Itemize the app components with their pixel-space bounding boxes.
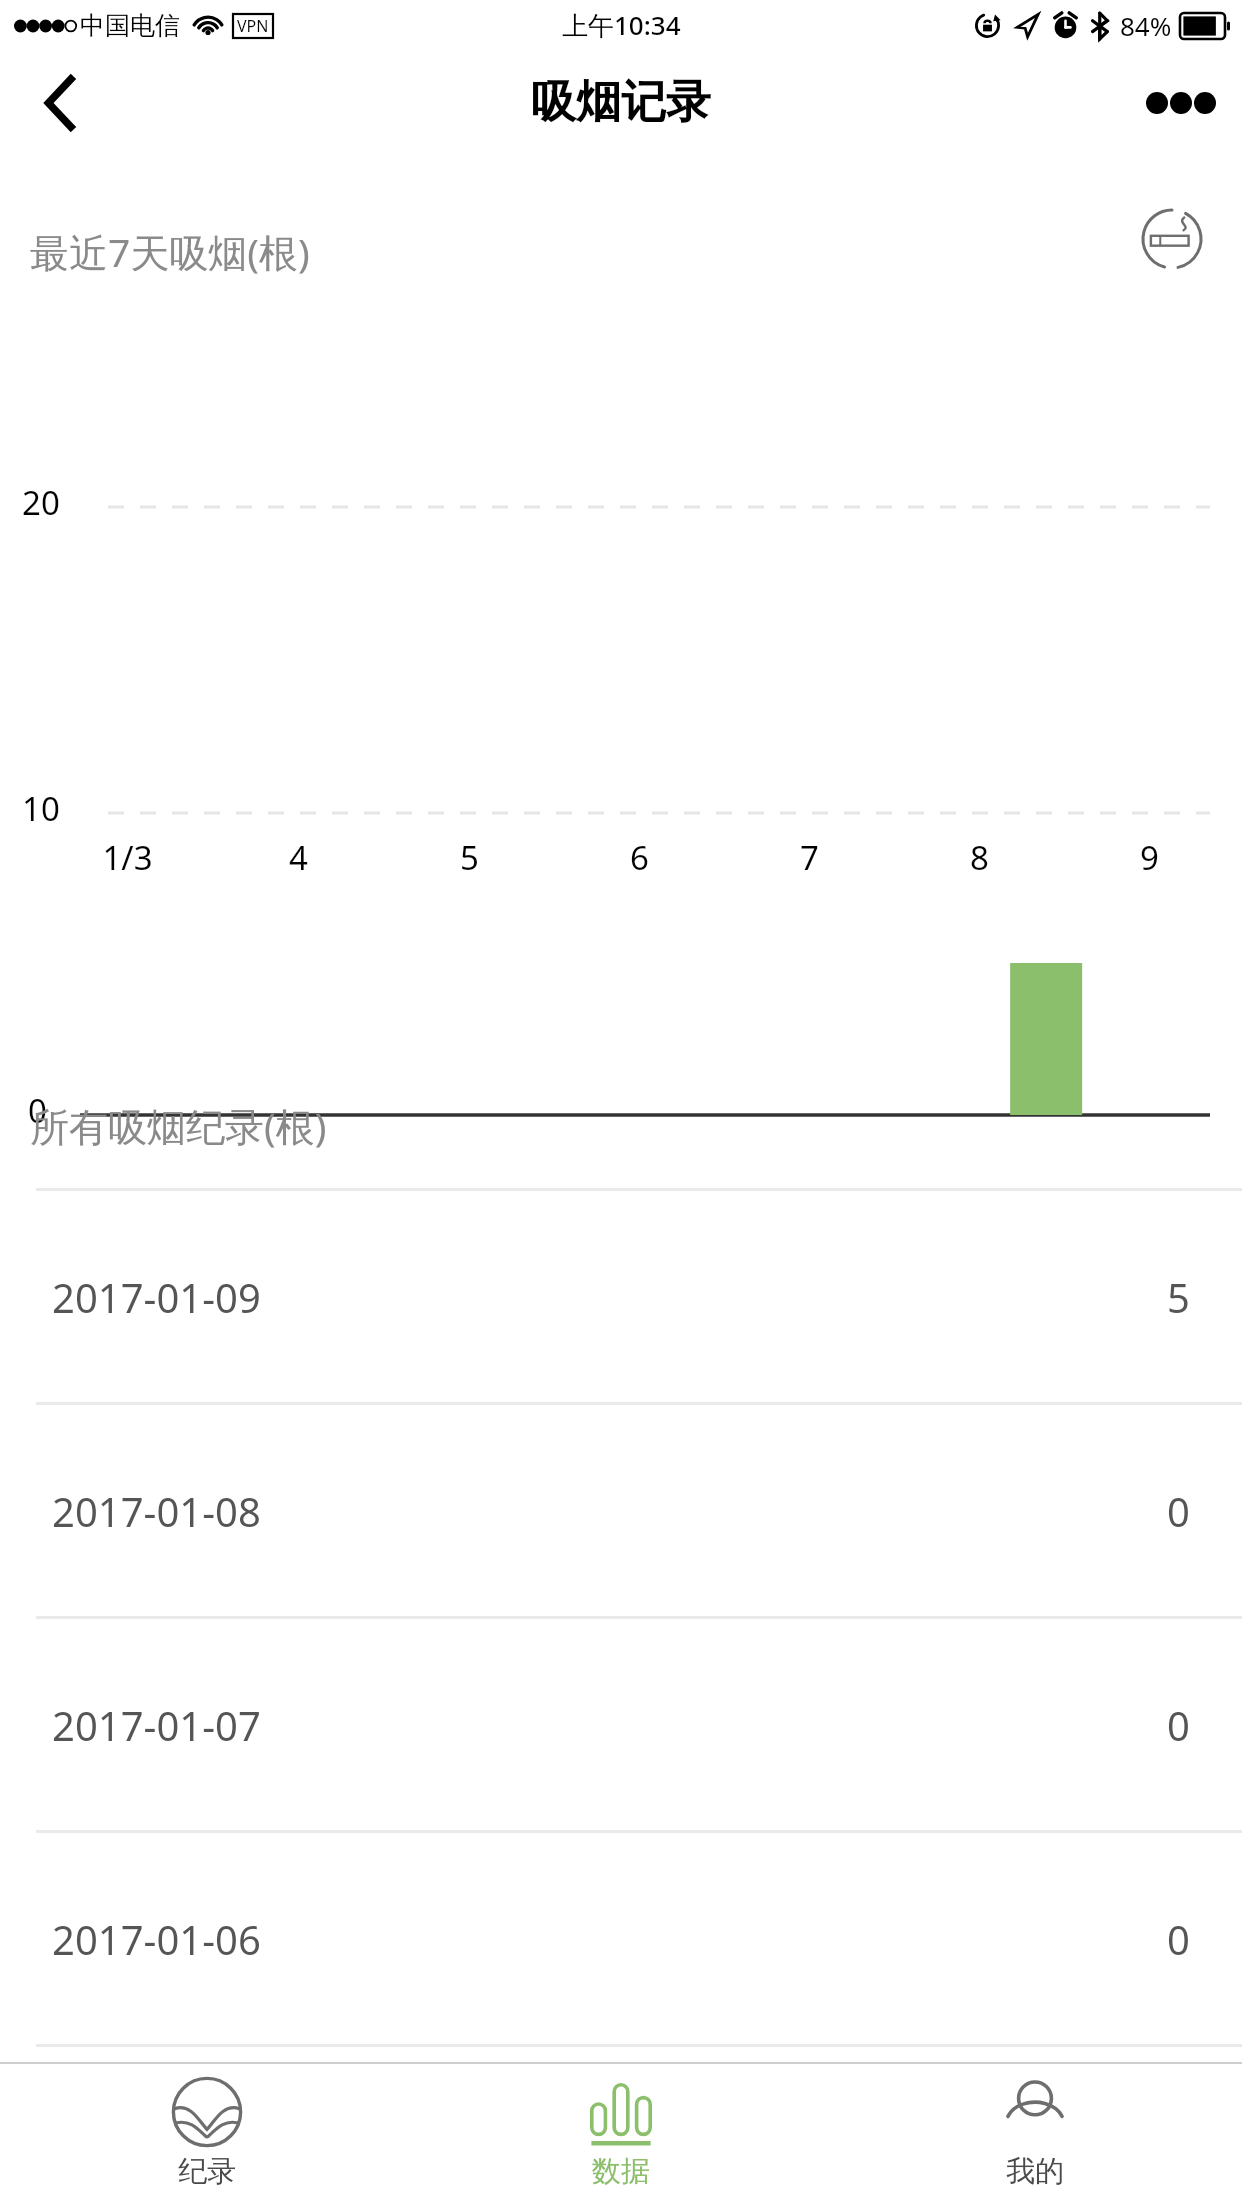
staticText: 8 — [970, 835, 989, 880]
staticText: 84% — [1120, 8, 1172, 43]
staticText: 7 — [800, 835, 819, 880]
staticText: 2017-01-08 — [52, 1484, 261, 1538]
staticText: 2017-01-09 — [52, 1270, 261, 1324]
button[interactable]: Back — [12, 55, 108, 151]
staticText: 1/3 — [102, 835, 153, 880]
staticText: 纪录 — [178, 2153, 236, 2190]
staticText: 5 — [1167, 1270, 1190, 1324]
button[interactable]: 2017-01-09 — [0, 1191, 1242, 1402]
staticText: 我的 — [1006, 2153, 1064, 2190]
staticText: 2017-01-06 — [52, 1912, 261, 1966]
staticText: 所有吸烟纪录(根) — [30, 1099, 327, 1152]
button[interactable]: 2017-01-08 — [0, 1405, 1242, 1616]
staticText: 中国电信 — [80, 10, 180, 41]
staticText: VPN — [237, 15, 269, 37]
staticText: 0 — [1167, 1912, 1190, 1966]
button[interactable]: More options — [1126, 50, 1236, 155]
staticText: 2017-01-07 — [52, 1698, 261, 1752]
staticText: 0 — [1167, 1484, 1190, 1538]
staticText: 0 — [1167, 1698, 1190, 1752]
button[interactable]: 2017-01-06 — [0, 1833, 1242, 2044]
staticText: 上午10:34 — [562, 7, 681, 43]
staticText: 5 — [460, 835, 479, 880]
staticText: 最近7天吸烟(根) — [30, 225, 310, 278]
button[interactable]: Add smoking record — [1124, 191, 1220, 287]
staticText: 4 — [289, 835, 308, 880]
button[interactable]: 纪录 — [0, 2064, 414, 2208]
staticText: 数据 — [592, 2153, 650, 2190]
button[interactable]: 数据 — [414, 2064, 828, 2208]
staticText: 10 — [22, 786, 60, 831]
staticText: 吸烟记录 — [531, 74, 711, 131]
staticText: 0 — [28, 1088, 47, 1133]
button[interactable]: 我的 — [828, 2064, 1242, 2208]
button[interactable]: 2017-01-07 — [0, 1619, 1242, 1830]
staticText: 6 — [630, 835, 649, 880]
staticText: 9 — [1140, 835, 1159, 880]
staticText: 20 — [22, 480, 60, 525]
